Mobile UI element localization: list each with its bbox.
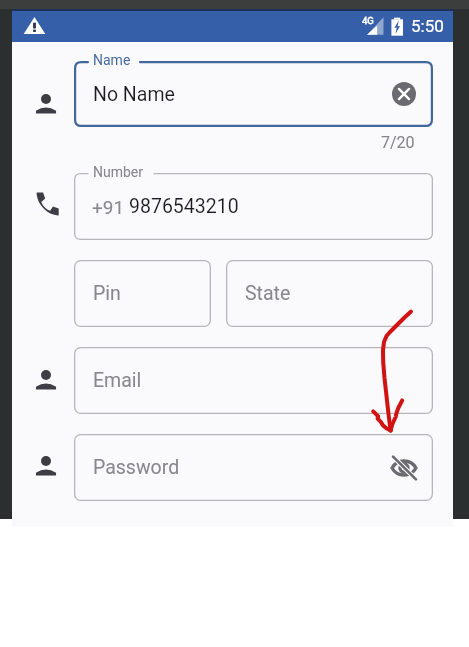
- staticText: 7/20: [381, 133, 415, 152]
- button[interactable]: Password: [74, 434, 433, 501]
- button[interactable]: Email: [74, 347, 433, 414]
- button[interactable]: Pin: [74, 260, 211, 327]
- button[interactable]: Name: [74, 61, 433, 127]
- button[interactable]: Clear text: [392, 82, 416, 106]
- staticText: Email: [93, 369, 142, 392]
- other: Warning: [23, 14, 46, 37]
- staticText: +91: [92, 196, 125, 218]
- button[interactable]: Number: [74, 173, 433, 240]
- staticText: Name: [93, 52, 131, 68]
- staticText: No Name: [93, 83, 175, 106]
- staticText: Number: [93, 164, 144, 180]
- staticText: Password: [93, 456, 180, 479]
- staticText: 5:50: [411, 16, 444, 36]
- button[interactable]: Show password: [391, 455, 417, 481]
- staticText: 4G: [362, 15, 374, 26]
- staticText: 9876543210: [129, 195, 239, 218]
- staticText: State: [245, 282, 291, 305]
- button[interactable]: State: [226, 260, 433, 327]
- staticText: Pin: [93, 282, 121, 305]
